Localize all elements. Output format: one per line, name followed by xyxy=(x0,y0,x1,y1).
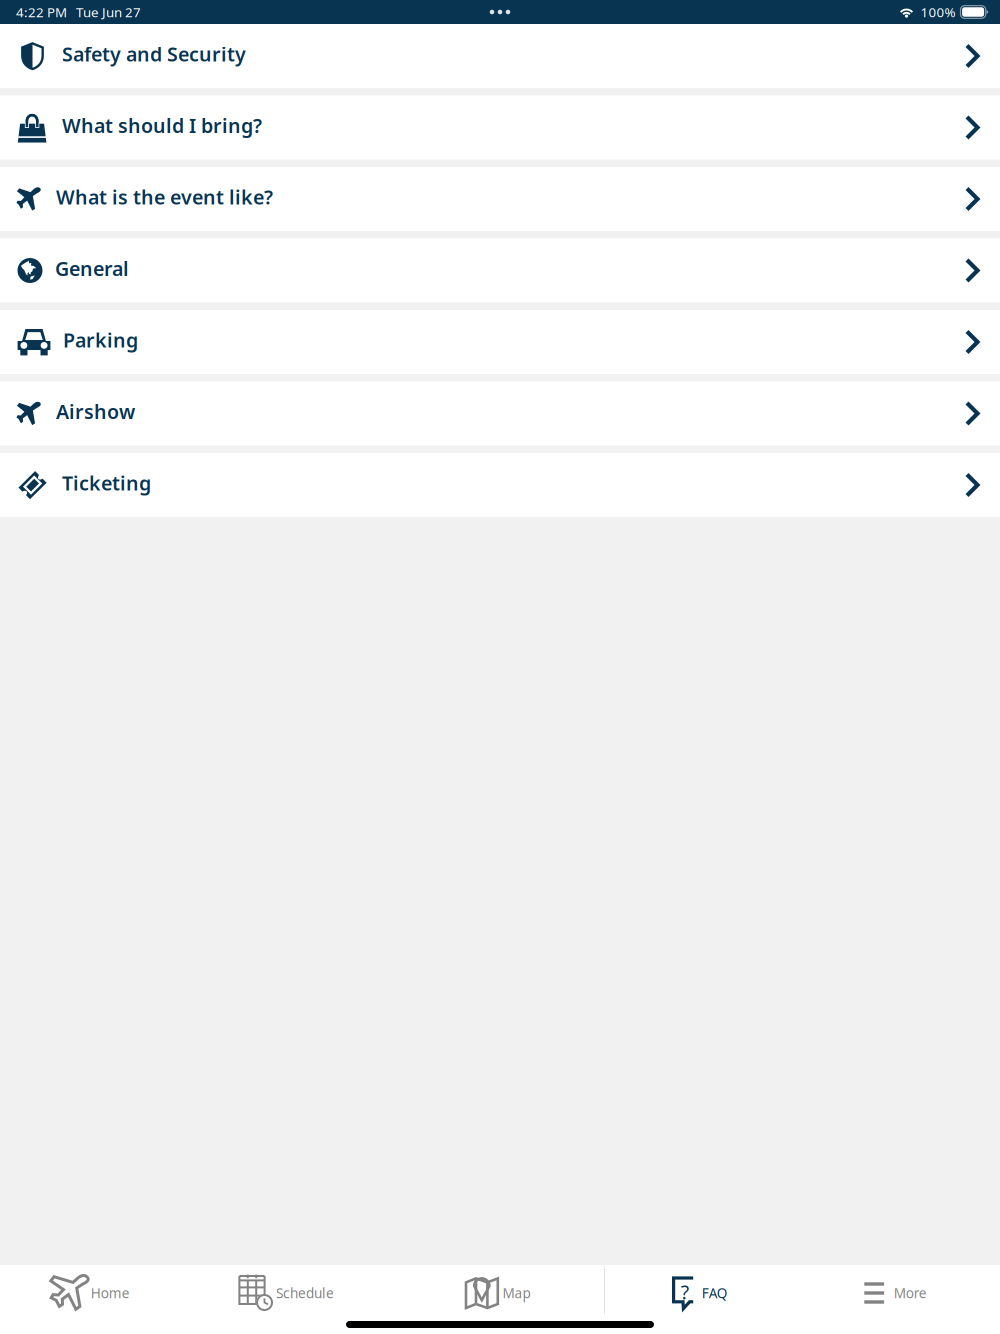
staticText: Tue Jun 27 xyxy=(76,3,141,21)
button[interactable]: More xyxy=(785,1265,1000,1315)
button[interactable]: What is the event like? xyxy=(0,167,1000,231)
button[interactable]: What should I bring? xyxy=(0,95,1000,159)
staticText: Schedule xyxy=(276,1284,334,1302)
button[interactable]: Home xyxy=(0,1265,184,1315)
staticText: 4:22 PM xyxy=(16,3,67,21)
staticText: 100% xyxy=(920,3,955,21)
staticText: Parking xyxy=(63,327,138,353)
button[interactable]: Schedule xyxy=(176,1265,396,1315)
button[interactable]: Ticketing xyxy=(0,453,1000,517)
staticText: Safety and Security xyxy=(62,41,246,67)
button[interactable]: ? xyxy=(590,1265,810,1315)
button[interactable]: Parking xyxy=(0,310,1000,374)
staticText: ? xyxy=(681,1279,689,1305)
button[interactable]: Safety and Security xyxy=(0,24,1000,88)
button[interactable]: General xyxy=(0,238,1000,302)
staticText: Map xyxy=(502,1284,530,1302)
staticText: Airshow xyxy=(56,398,135,425)
staticText: FAQ xyxy=(702,1284,728,1302)
staticText: Home xyxy=(91,1284,130,1302)
staticText: What should I bring? xyxy=(62,112,262,139)
button[interactable]: Map xyxy=(387,1265,607,1315)
button[interactable]: Airshow xyxy=(0,381,1000,445)
staticText: More xyxy=(894,1284,927,1302)
staticText: Ticketing xyxy=(62,470,151,496)
staticText: What is the event like? xyxy=(56,184,273,210)
staticText: General xyxy=(55,255,129,282)
